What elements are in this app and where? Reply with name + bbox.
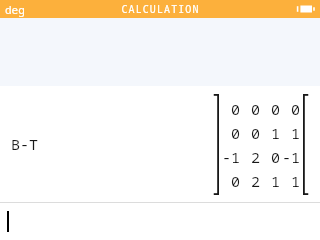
button[interactable]: deg xyxy=(0,2,29,17)
staticText: 0 xyxy=(230,171,240,191)
staticText: -1 xyxy=(282,147,300,167)
staticText: 2 xyxy=(250,147,260,167)
staticText: 1 xyxy=(290,171,300,191)
staticText: deg xyxy=(5,2,25,17)
button[interactable]: B-T xyxy=(0,86,320,202)
staticText: 0 xyxy=(270,147,280,167)
staticText: 0 xyxy=(230,123,240,143)
staticText: CALCULATION xyxy=(121,2,200,16)
staticText: 0 xyxy=(290,99,300,119)
staticText: 0 xyxy=(250,99,260,119)
staticText: 1 xyxy=(290,123,300,143)
staticText: 1 xyxy=(270,123,280,143)
staticText: 0 xyxy=(270,99,280,119)
button[interactable]: Battery level xyxy=(296,2,316,16)
staticText: -1 xyxy=(222,147,240,167)
staticText: 2 xyxy=(250,171,260,191)
staticText: B-T xyxy=(11,134,39,154)
staticText: 0 xyxy=(250,123,260,143)
button[interactable] xyxy=(0,202,320,240)
staticText: 1 xyxy=(270,171,280,191)
staticText: 0 xyxy=(230,99,240,119)
